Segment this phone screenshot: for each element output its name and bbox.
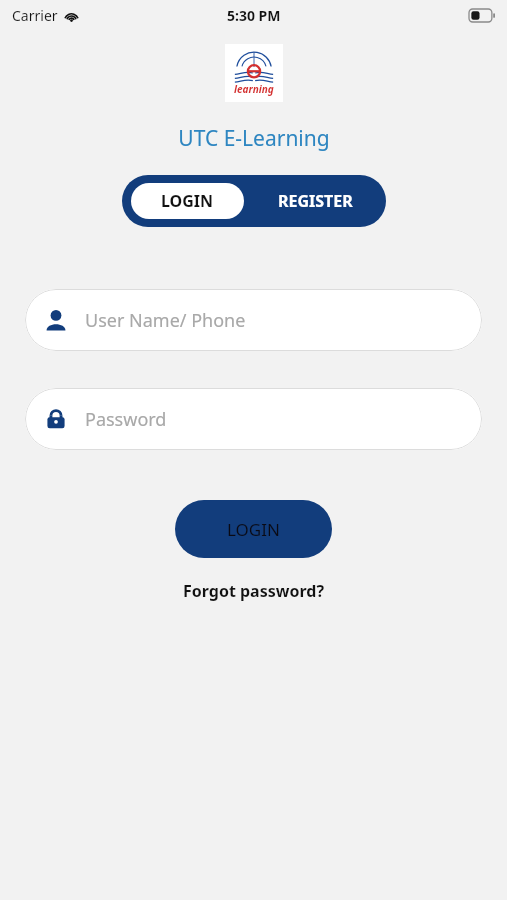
staticText: learning [234, 82, 274, 96]
button[interactable]: REGISTER [244, 175, 386, 227]
staticText: Carrier [12, 6, 58, 25]
staticText: REGISTER [278, 190, 353, 212]
button[interactable]: Forgot password? [175, 576, 333, 606]
staticText: User Name/ Phone [85, 308, 246, 333]
staticText: LOGIN [227, 518, 280, 541]
button[interactable]: LOGIN [175, 500, 332, 558]
staticText: Password [85, 407, 167, 432]
staticText: Forgot password? [183, 580, 325, 602]
button[interactable]: User Name/ Phone [25, 289, 482, 351]
staticText: LOGIN [161, 190, 214, 212]
button[interactable]: Password [25, 388, 482, 450]
button[interactable]: LOGIN [131, 183, 244, 219]
staticText: UTC E-Learning [178, 124, 330, 153]
staticText: 5:30 PM [227, 6, 281, 25]
